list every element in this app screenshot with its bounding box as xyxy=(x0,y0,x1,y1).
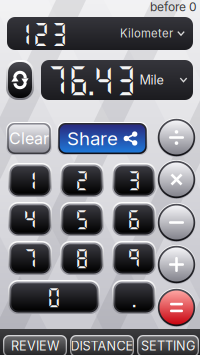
button[interactable]: 2 xyxy=(60,163,104,197)
staticText: 1 xyxy=(22,168,37,192)
staticText: Clear xyxy=(9,129,49,148)
button[interactable]: 1 xyxy=(8,163,52,197)
button[interactable]: Clear xyxy=(6,122,52,155)
staticText: SETTING xyxy=(141,338,195,354)
staticText: Mile xyxy=(139,72,163,88)
staticText: before 0 xyxy=(150,0,197,14)
staticText: 9 xyxy=(126,246,141,270)
button[interactable]: Multiply xyxy=(157,160,196,199)
button[interactable]: DISTANCE xyxy=(70,335,134,355)
staticText: DISTANCE xyxy=(70,338,133,354)
button[interactable]: Plus xyxy=(157,245,196,284)
staticText: 7 xyxy=(22,246,37,270)
button[interactable]: Equals xyxy=(157,288,196,327)
button[interactable]: 8 xyxy=(60,241,104,275)
button[interactable]: SETTING xyxy=(137,335,199,355)
button[interactable]: 0 xyxy=(8,280,100,314)
button[interactable]: Minus xyxy=(157,203,196,242)
button[interactable]: 6 xyxy=(112,202,156,236)
staticText: REVIEW xyxy=(11,338,59,354)
staticText: 123 xyxy=(14,19,68,48)
staticText: 6 xyxy=(126,207,141,231)
button[interactable]: 7 xyxy=(8,241,52,275)
button[interactable]: Share xyxy=(57,122,148,155)
staticText: 5 xyxy=(74,207,89,231)
staticText: 8 xyxy=(74,246,89,270)
staticText: 4 xyxy=(22,207,37,231)
staticText: 0 xyxy=(46,285,61,309)
staticText: 76.43 xyxy=(45,62,136,98)
button[interactable]: Divide xyxy=(157,118,196,157)
button[interactable]: 5 xyxy=(60,202,104,236)
button[interactable]: 9 xyxy=(112,241,156,275)
button[interactable]: . xyxy=(112,280,156,314)
staticText: Share xyxy=(67,127,118,150)
staticText: 3 xyxy=(126,168,141,192)
button[interactable]: 4 xyxy=(8,202,52,236)
button[interactable]: REVIEW xyxy=(3,335,67,355)
staticText: . xyxy=(133,285,135,309)
staticText: Kilometer xyxy=(120,27,173,40)
button[interactable]: 3 xyxy=(112,163,156,197)
staticText: 2 xyxy=(74,168,89,192)
button[interactable]: Swap units xyxy=(6,60,34,100)
